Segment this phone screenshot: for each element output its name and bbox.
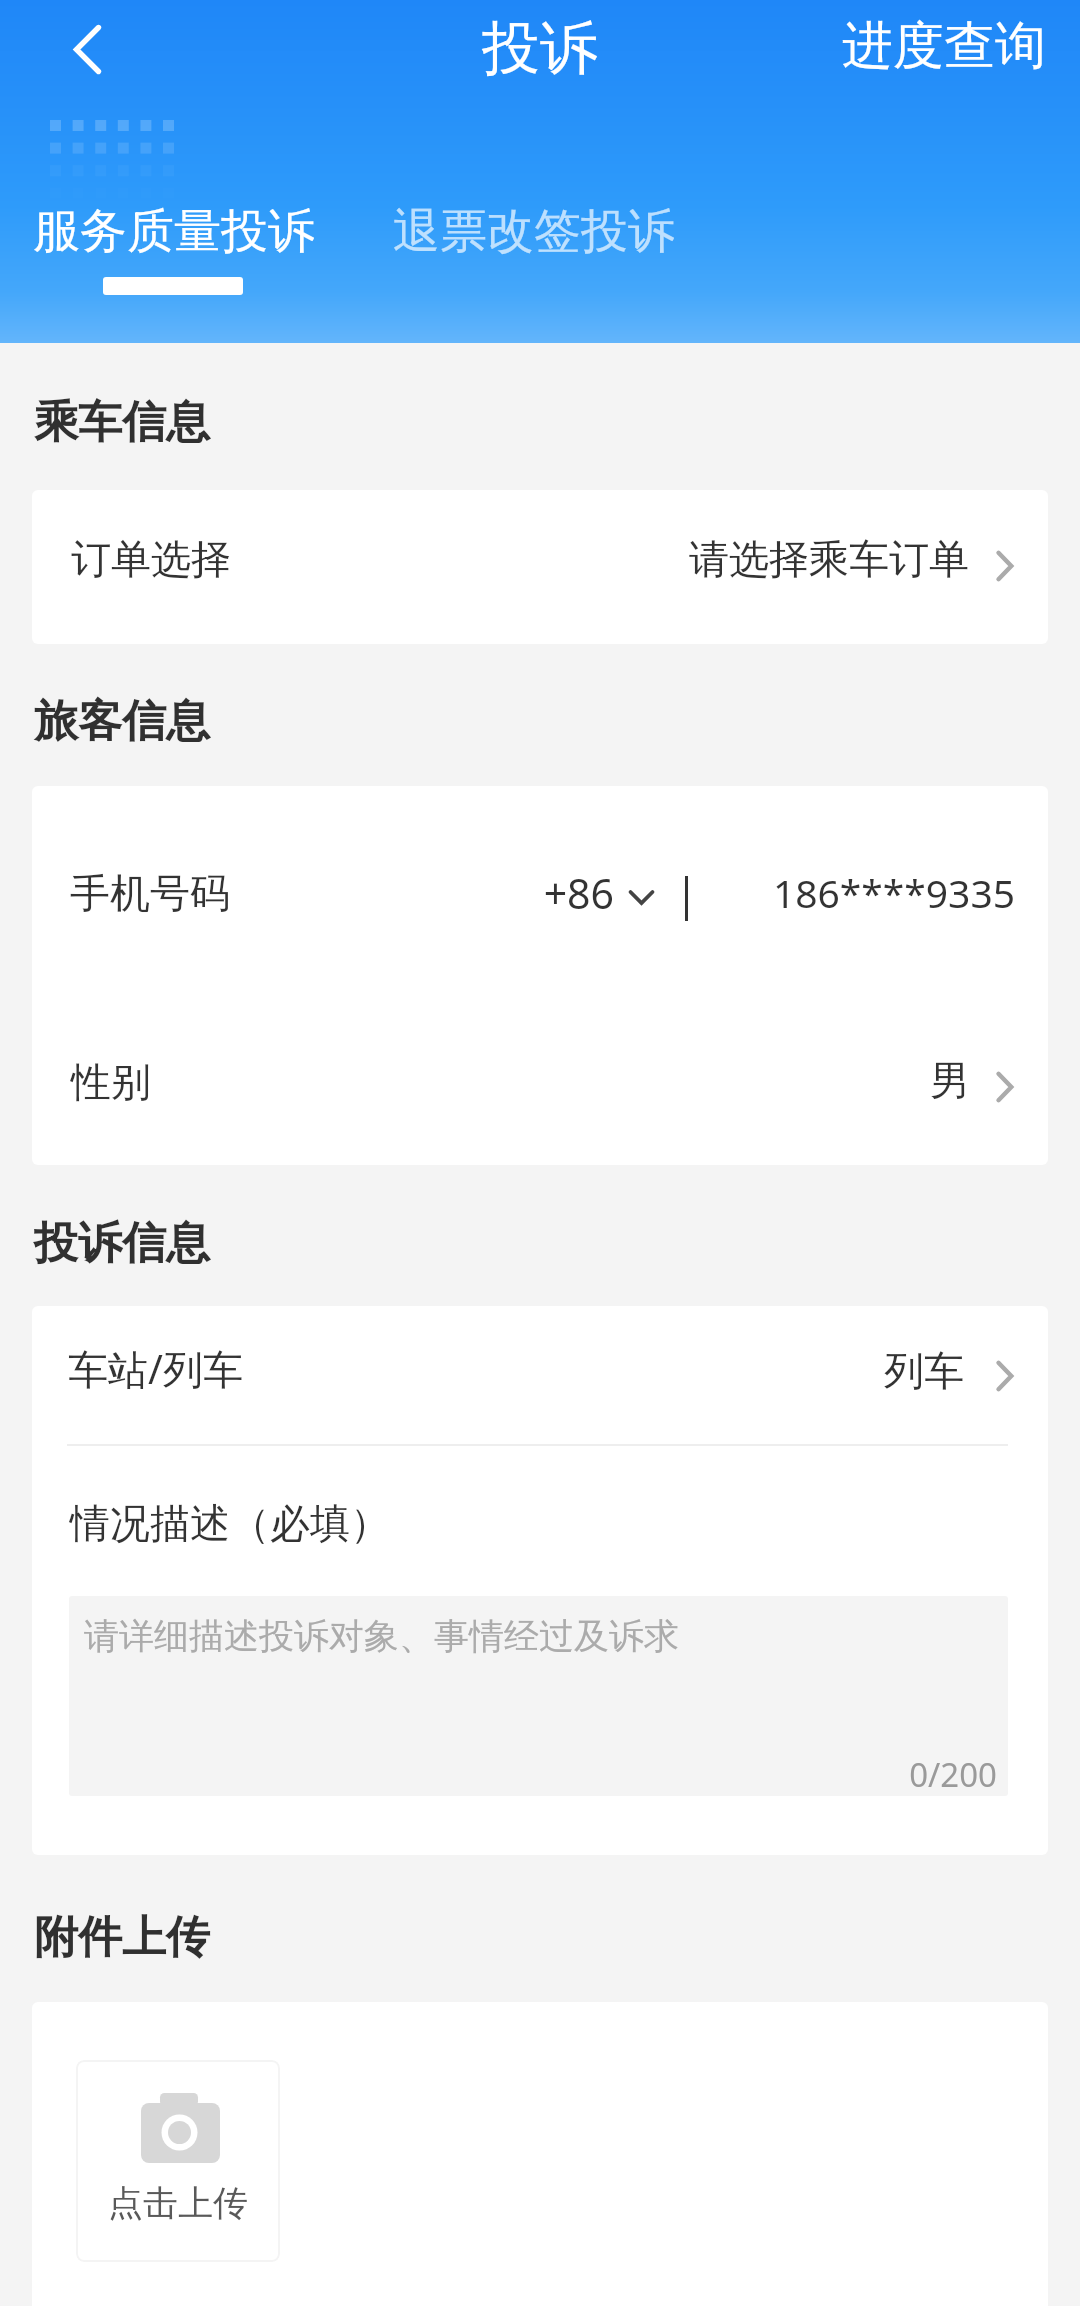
staticText: 请选择乘车订单 [689,534,969,584]
staticText: 进度查询 [842,14,1046,78]
staticText: 乘车信息 [34,395,210,450]
staticText: 车站/列车 [68,1341,243,1396]
staticText: 点击上传 [108,2181,248,2225]
button[interactable]: Back [37,0,137,100]
button[interactable]: 进度查询 [800,0,1046,92]
staticText: 服务质量投诉 [33,202,315,261]
button[interactable]: 订单选择 [32,490,1048,644]
staticText: 0/200 [909,1752,997,1797]
button[interactable]: 车站/列车 [32,1306,1048,1444]
button[interactable]: 退票改签投诉 [360,173,720,289]
staticText: 投诉信息 [34,1216,210,1271]
button[interactable]: Choose country code [624,880,664,916]
staticText: +86 [543,865,614,921]
staticText: 情况描述（必填） [70,1498,390,1548]
staticText: 订单选择 [71,534,231,584]
staticText: 退票改签投诉 [393,202,675,261]
button[interactable]: 情况描述 [69,1596,1008,1796]
staticText: 性别 [71,1057,151,1107]
staticText: 投诉 [482,12,598,85]
staticText: 186****9335 [772,866,1015,919]
button[interactable]: 点击上传附件 [76,2060,280,2262]
staticText: 旅客信息 [34,694,210,749]
staticText: 列车 [884,1346,964,1396]
staticText: 男 [930,1055,970,1105]
button[interactable]: 性别 [32,988,1048,1165]
staticText: 请详细描述投诉对象、事情经过及诉求 [84,1614,679,1658]
button[interactable]: 服务质量投诉 [0,173,360,289]
staticText: 附件上传 [34,1910,210,1965]
staticText: 手机号码 [70,868,230,918]
